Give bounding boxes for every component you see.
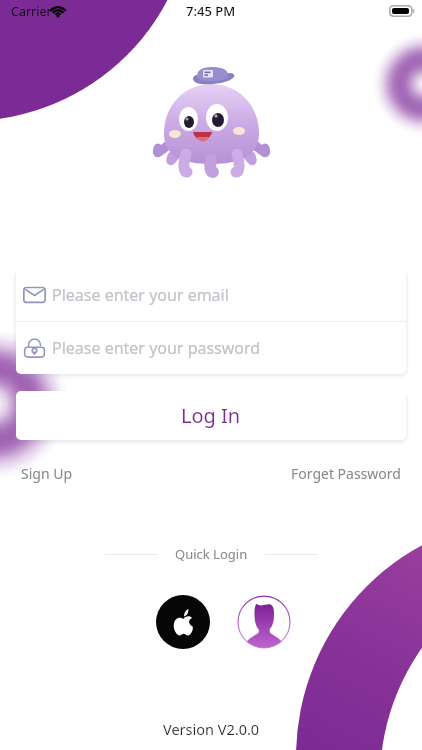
button[interactable]: Please enter your password bbox=[16, 322, 406, 374]
button[interactable]: Log In bbox=[16, 391, 406, 440]
staticText: Carrier bbox=[11, 3, 52, 20]
button[interactable]: Sign in with Apple bbox=[156, 595, 210, 649]
staticText: Please enter your password bbox=[52, 337, 261, 359]
staticText: 7:45 PM bbox=[186, 2, 236, 20]
staticText: Version V2.0.0 bbox=[163, 719, 260, 739]
staticText: Forget Password bbox=[291, 464, 401, 483]
button[interactable]: Please enter your email bbox=[16, 269, 406, 321]
staticText: Please enter your email bbox=[52, 284, 229, 306]
button[interactable]: Sign in as guest bbox=[237, 595, 291, 649]
button[interactable]: Sign Up bbox=[16, 462, 78, 485]
staticText: Log In bbox=[181, 402, 241, 429]
button[interactable]: Forget Password bbox=[286, 462, 406, 485]
staticText: Quick Login bbox=[175, 545, 248, 563]
staticText: Sign Up bbox=[21, 464, 73, 483]
other: Wi-Fi bbox=[50, 6, 66, 17]
